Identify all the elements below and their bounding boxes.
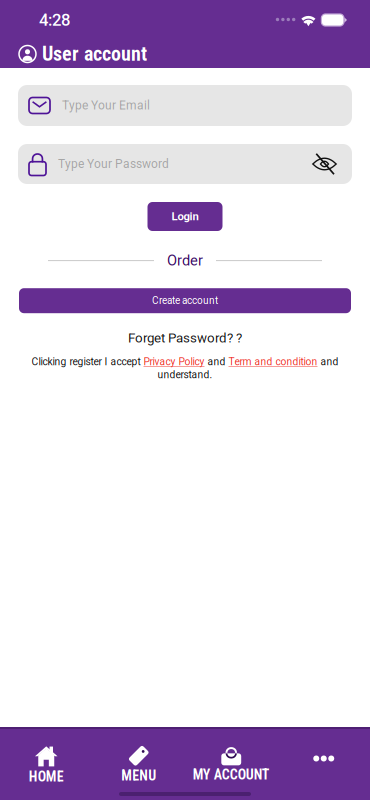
button[interactable]: More xyxy=(277,729,370,788)
button[interactable]: Privacy Policy xyxy=(143,356,204,368)
staticText: and xyxy=(204,356,228,368)
button[interactable]: Show password xyxy=(306,156,341,172)
staticText: HOME xyxy=(29,768,64,785)
button[interactable]: Term and condition xyxy=(228,356,317,368)
staticText: Privacy Policy xyxy=(143,356,204,368)
staticText: User account xyxy=(42,42,147,66)
button[interactable]: Login xyxy=(147,202,222,231)
staticText: MY ACCOUNT xyxy=(193,766,270,783)
staticText: Order xyxy=(167,252,203,269)
button[interactable]: Create account xyxy=(19,288,351,313)
button[interactable]: Forget Password? ? xyxy=(128,330,242,346)
staticText: Type Your Password xyxy=(58,157,169,171)
staticText: 4:28 xyxy=(39,10,70,30)
staticText: Term and condition xyxy=(228,356,317,368)
button[interactable]: MENU xyxy=(92,729,185,788)
staticText: Type Your Email xyxy=(62,98,150,113)
staticText: Login xyxy=(171,210,198,223)
staticText: Forget Password? ? xyxy=(128,330,242,346)
staticText: MENU xyxy=(121,767,156,784)
staticText: and xyxy=(317,356,338,368)
button[interactable]: HOME xyxy=(0,729,92,788)
staticText: Clicking register I accept xyxy=(31,356,143,368)
staticText: Create account xyxy=(152,295,218,306)
button[interactable]: MY ACCOUNT xyxy=(185,729,277,788)
staticText: understand. xyxy=(157,369,212,381)
